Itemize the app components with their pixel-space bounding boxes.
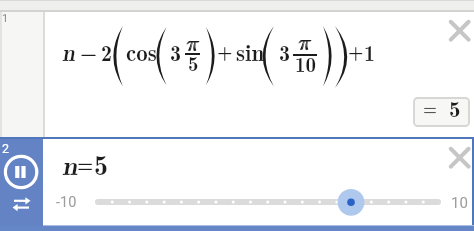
staticText: 10 [295,48,316,78]
button[interactable] [413,97,470,127]
staticText: 5 [449,91,461,124]
staticText: + [348,36,364,65]
button[interactable] [2,153,40,191]
staticText: 1 [2,12,9,25]
button[interactable] [0,12,474,137]
button[interactable] [0,139,474,226]
staticText: cos [126,35,157,68]
staticText: 𝜋 [186,33,199,55]
staticText: n [62,144,78,183]
staticText: 5 [94,143,109,183]
staticText: 𝜋 [298,32,311,54]
staticText: 𝜋 [187,33,200,55]
staticText: -10 [56,194,77,211]
staticText: 5 [188,47,199,77]
button[interactable] [444,142,474,173]
staticText: sin [236,35,265,68]
staticText: 𝜋 [186,33,199,55]
staticText: 𝜋 [299,32,312,54]
staticText: 3 [170,36,182,67]
button[interactable] [337,188,365,216]
staticText: 1 [364,36,376,67]
staticText: 2 [101,36,113,67]
staticText: + [217,36,233,65]
staticText: n [62,35,75,68]
staticText: 3 [279,36,291,67]
staticText: − [80,36,98,67]
staticText: = [77,148,94,178]
button[interactable] [444,15,474,46]
button[interactable] [10,195,34,213]
staticText: 2 [2,141,10,156]
staticText: 𝜋 [298,32,311,54]
staticText: 10 [451,194,468,212]
staticText: = [423,95,438,121]
